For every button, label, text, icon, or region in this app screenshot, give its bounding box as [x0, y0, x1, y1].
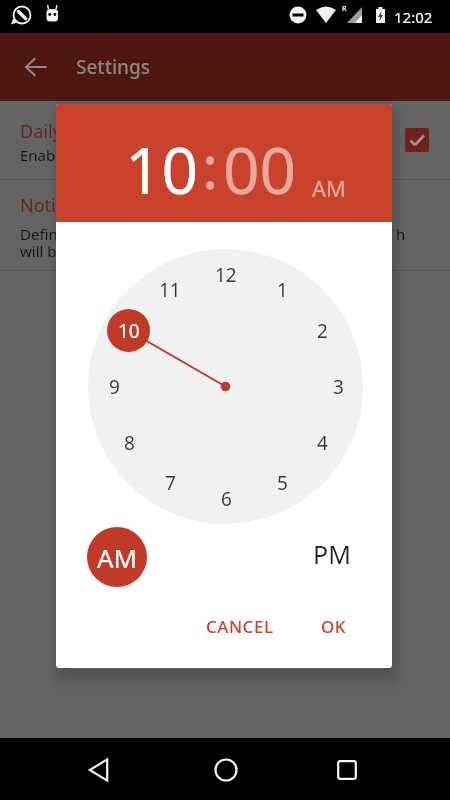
staticText: 5 [277, 470, 288, 496]
staticText: AM [97, 540, 138, 575]
button[interactable] [16, 47, 56, 87]
staticText: PM [313, 537, 351, 571]
button[interactable]: CANCEL [190, 600, 290, 652]
staticText: 4 [317, 430, 328, 456]
staticText: 00 [223, 126, 297, 213]
staticText: 3 [333, 374, 344, 400]
button[interactable] [325, 748, 369, 792]
staticText: 1 [277, 277, 288, 303]
staticText: OK [321, 615, 347, 638]
staticText: : [202, 125, 219, 207]
button[interactable]: OK [300, 600, 368, 652]
staticText: 9 [109, 374, 120, 400]
button[interactable] [203, 747, 248, 792]
staticText: 10 [125, 126, 199, 213]
button[interactable]: PM [302, 524, 362, 584]
staticText: h [396, 224, 406, 244]
button[interactable] [405, 128, 429, 152]
staticText: 10 [118, 318, 140, 344]
staticText: 8 [124, 430, 135, 456]
staticText: 12 [215, 262, 237, 288]
button[interactable]: AM [87, 527, 147, 587]
staticText: 6 [221, 486, 232, 512]
staticText: Enables you to reset the counter daily [20, 145, 286, 165]
staticText: R [342, 4, 347, 14]
staticText: 7 [165, 470, 176, 496]
staticText: Daily step counter reset [20, 119, 221, 144]
staticText: 11 [159, 277, 181, 303]
staticText: will be shown [20, 241, 116, 261]
staticText: CANCEL [206, 615, 274, 638]
staticText: Settings [76, 54, 150, 80]
staticText: 12:02 [394, 7, 433, 27]
button[interactable] [77, 748, 121, 792]
staticText: AM [312, 173, 347, 203]
staticText: 2 [317, 318, 328, 344]
staticText: Defines the time when the daily notifica… [20, 224, 340, 244]
staticText: Notification time [20, 193, 162, 218]
